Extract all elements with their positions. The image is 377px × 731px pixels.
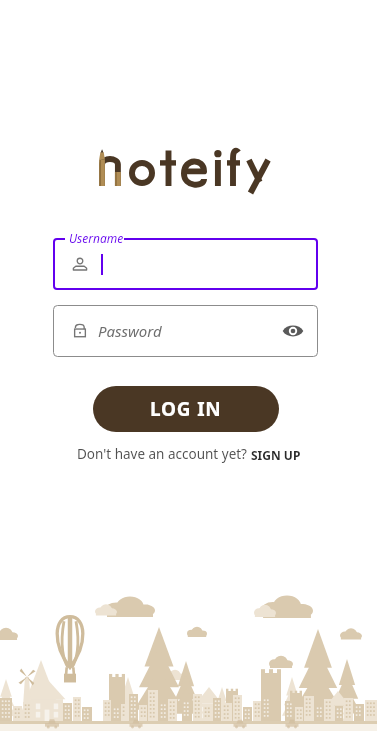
- staticText: Password: [98, 321, 162, 341]
- staticText: Username: [69, 230, 124, 246]
- button[interactable]: Show password: [280, 318, 306, 344]
- button[interactable]: LOG IN: [93, 386, 279, 432]
- staticText: SIGN UP: [251, 447, 301, 463]
- button[interactable]: [53, 238, 318, 290]
- staticText: Don't have an account yet?: [77, 445, 251, 463]
- button[interactable]: Password: [53, 305, 318, 357]
- staticText: LOG IN: [150, 396, 222, 422]
- button[interactable]: SIGN UP: [251, 447, 301, 463]
